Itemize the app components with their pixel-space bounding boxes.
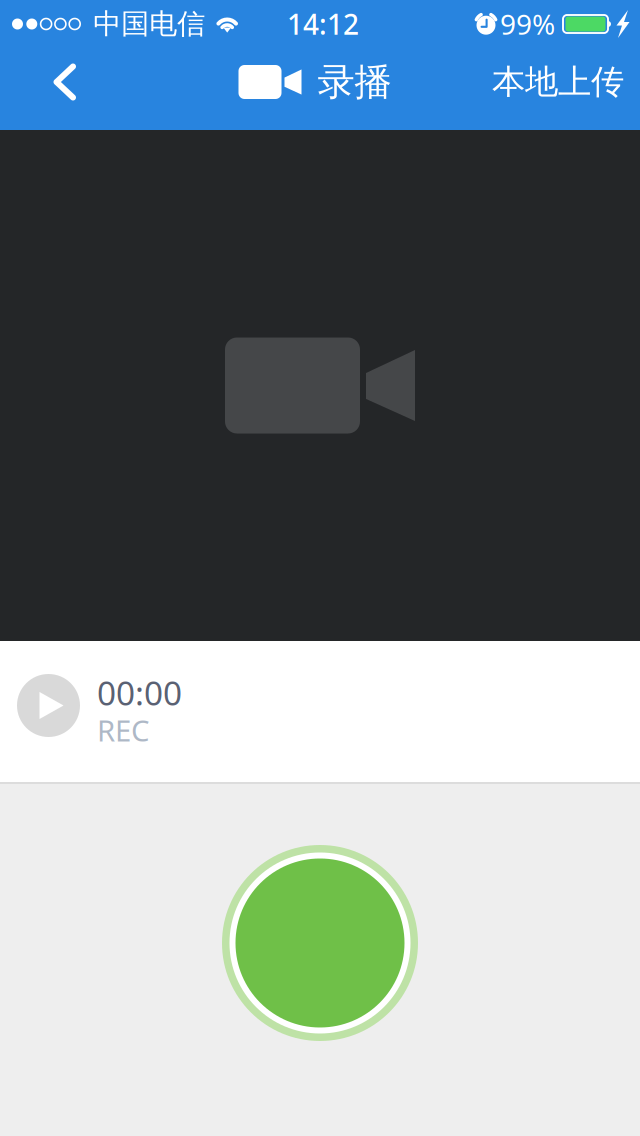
staticText: 14:12 <box>287 5 359 43</box>
staticText: 00:00 <box>97 670 182 715</box>
staticText: REC <box>97 711 150 750</box>
button[interactable]: Back <box>0 44 130 119</box>
button[interactable]: 本地上传 <box>476 44 640 119</box>
staticText: 录播 <box>317 59 391 105</box>
staticText: 中国电信 <box>93 7 205 41</box>
button[interactable]: Record <box>222 845 418 1041</box>
staticText: 本地上传 <box>492 61 624 102</box>
staticText: 99% <box>500 5 555 43</box>
button[interactable]: 00:00 <box>0 641 640 782</box>
